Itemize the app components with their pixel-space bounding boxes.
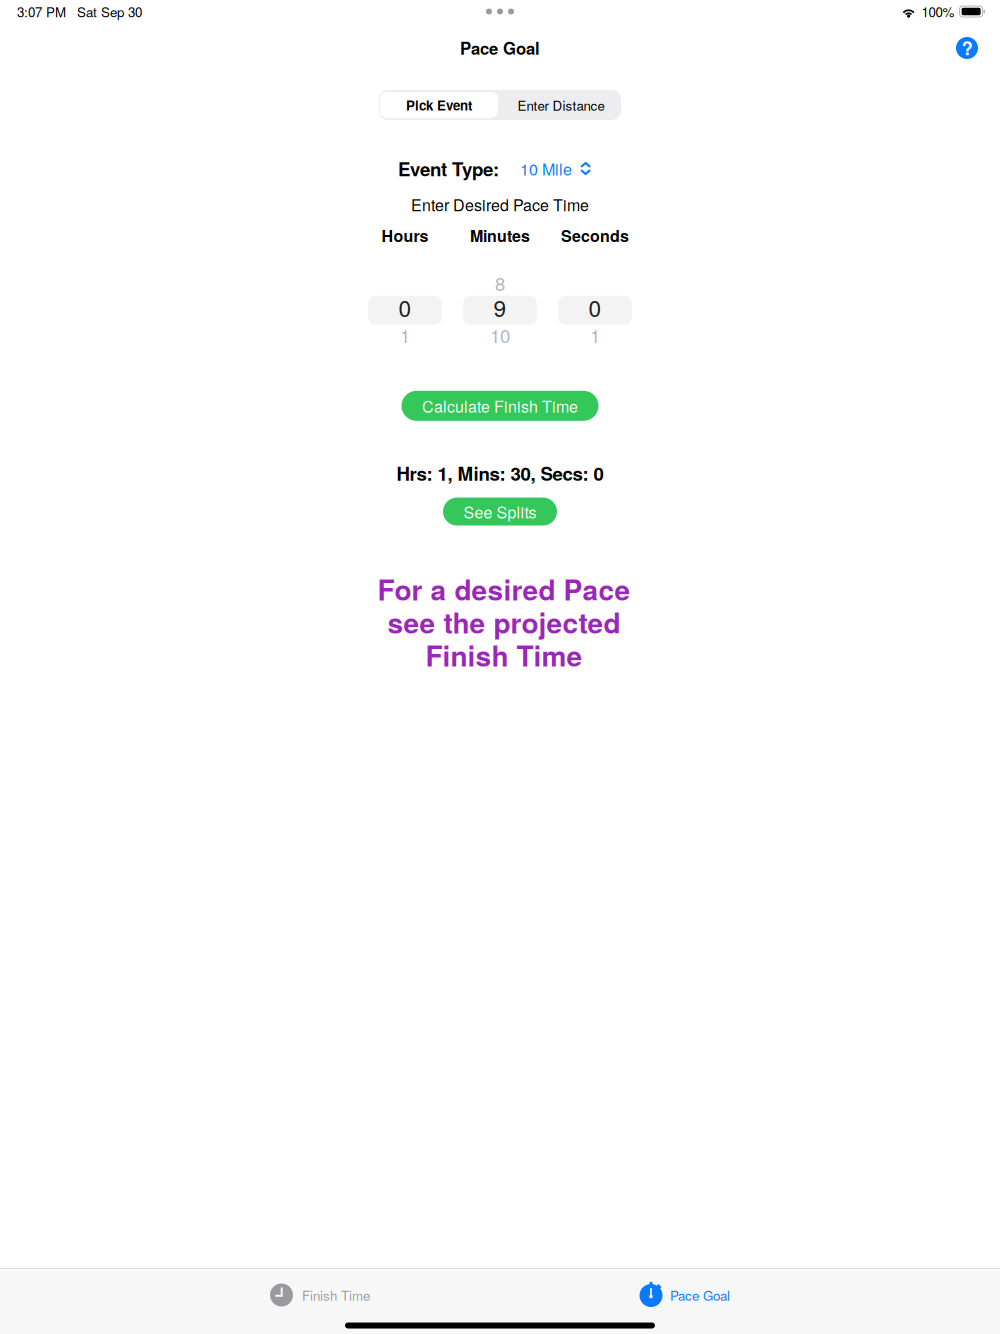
staticText: Hrs: 1, Mins: 30, Secs: 0 [396, 460, 603, 486]
staticText: 0 [398, 291, 411, 324]
staticText: 3:07 PM [17, 2, 66, 21]
staticText: Enter Desired Pace Time [411, 193, 589, 216]
staticText: Minutes [470, 224, 530, 247]
staticText: Calculate Finish Time [422, 394, 578, 417]
staticText: Seconds [561, 224, 629, 247]
staticText: 9 [493, 291, 506, 324]
button[interactable]: Pace Goal [638, 1273, 768, 1317]
staticText: 1 [400, 321, 410, 348]
staticText: Event Type: [398, 155, 499, 182]
staticText: Finish Time [302, 1285, 370, 1305]
staticText: Pace Goal [670, 1285, 730, 1305]
button[interactable]: Calculate Finish Time [401, 391, 598, 421]
button[interactable]: Finish Time [270, 1273, 400, 1317]
staticText: Sat Sep 30 [77, 2, 142, 21]
staticText: 10 Mile [520, 157, 572, 180]
staticText: ? [961, 34, 972, 61]
staticText: See Splits [463, 500, 536, 523]
staticText: 100% [922, 2, 955, 21]
staticText: For a desired Pace [377, 569, 630, 609]
staticText: Enter Distance [517, 95, 604, 115]
button[interactable]: See Splits [443, 498, 557, 526]
staticText: Hours [381, 224, 428, 247]
staticText: see the projected [387, 602, 620, 642]
staticText: Finish Time [425, 635, 582, 675]
staticText: 10 [490, 321, 510, 348]
staticText: 1 [590, 321, 600, 348]
staticText: 8 [495, 269, 505, 296]
button[interactable]: Pick Event [378, 90, 500, 120]
staticText: 0 [588, 291, 601, 324]
button[interactable]: Enter Distance [500, 90, 622, 120]
button[interactable]: 10 Mile [520, 158, 591, 179]
button[interactable]: Help [950, 31, 984, 65]
staticText: Pace Goal [460, 36, 540, 60]
staticText: Pick Event [406, 95, 472, 115]
